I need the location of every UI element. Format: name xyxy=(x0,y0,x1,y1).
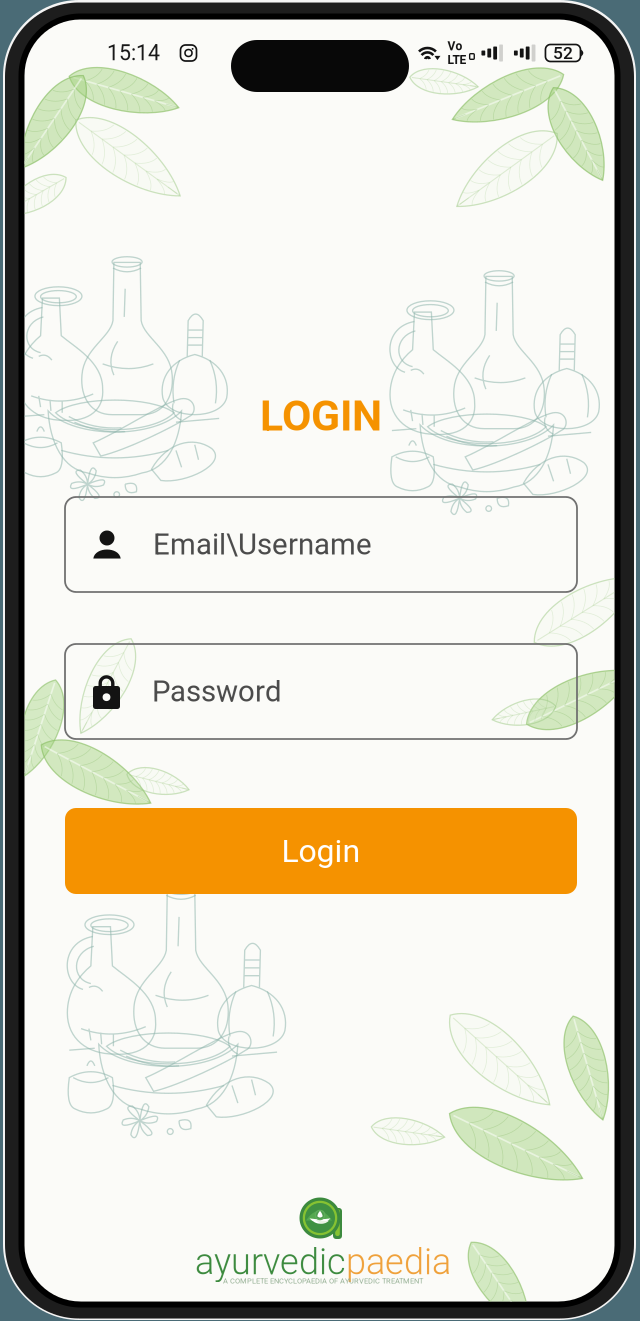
staticText: Vo xyxy=(447,39,462,53)
staticText: paedia xyxy=(346,1241,451,1283)
button[interactable]: Login xyxy=(65,808,577,894)
staticText: A COMPLETE ENCYCLOPAEDIA OF AYURVEDIC TR… xyxy=(223,1277,423,1285)
staticText: Login xyxy=(281,832,360,870)
staticText: 15:14 xyxy=(107,40,160,65)
staticText: LOGIN xyxy=(260,391,382,441)
staticText: Password xyxy=(152,674,282,709)
button[interactable]: Password xyxy=(65,644,577,739)
button[interactable]: Email\Username xyxy=(65,497,577,592)
staticText: Email\Username xyxy=(153,527,372,562)
staticText: 52 xyxy=(553,43,573,63)
staticText: LTE xyxy=(447,53,466,67)
staticText: ayurvedic xyxy=(195,1241,346,1283)
